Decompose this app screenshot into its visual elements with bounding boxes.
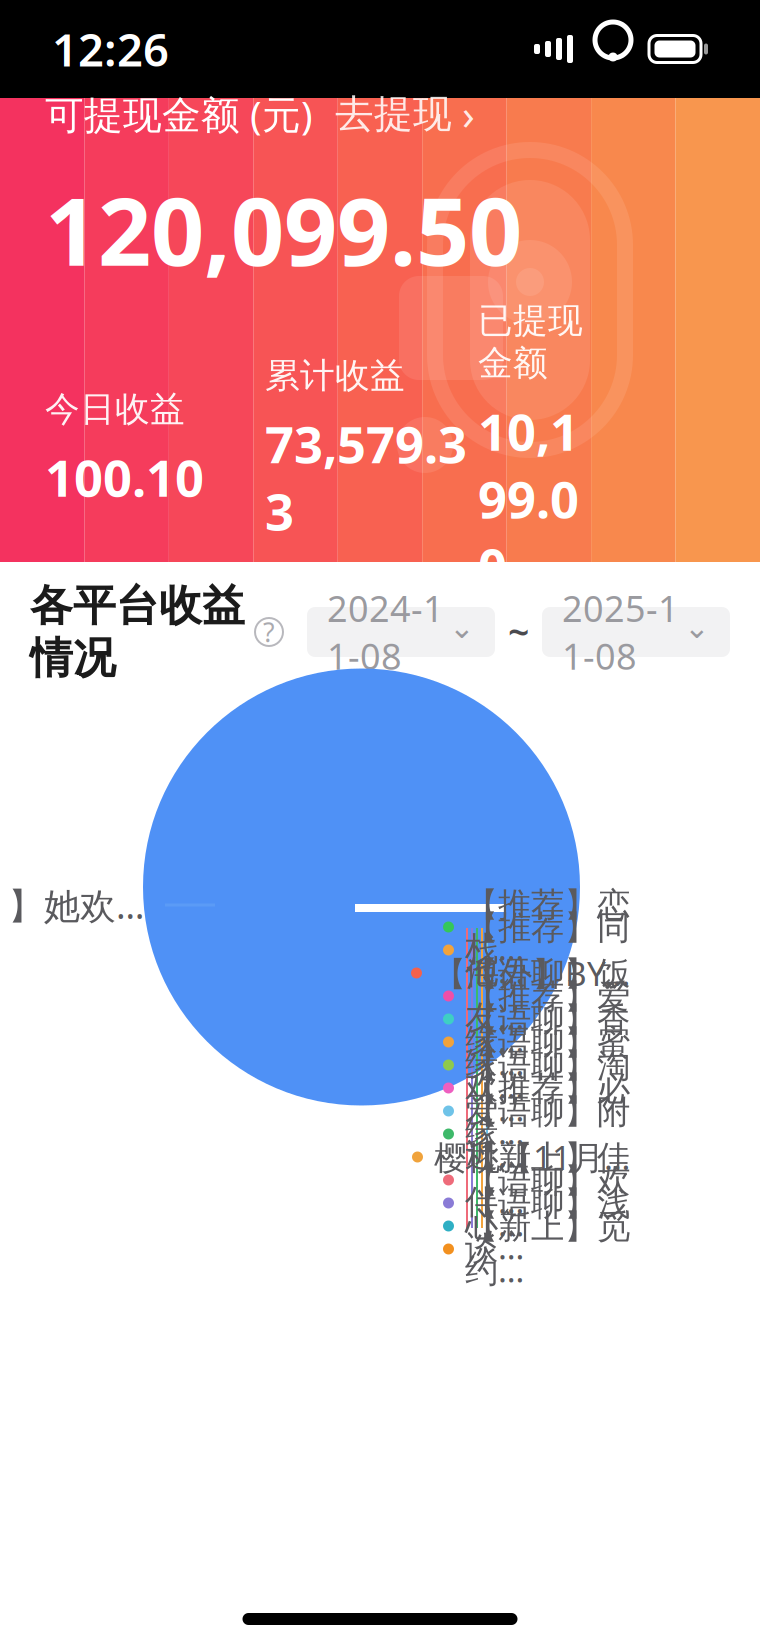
staticText: ⌄: [684, 610, 710, 645]
staticText: 【语聊】欢心…: [465, 1160, 630, 1246]
staticText: 【推荐】恋栈…: [465, 884, 630, 970]
staticText: 120,099.50: [45, 167, 522, 291]
staticText: 】她欢…: [8, 881, 144, 929]
staticText: 【语聊】浅谈…: [465, 1183, 630, 1269]
staticText: 【推荐】爱缘…: [465, 976, 630, 1062]
button[interactable]: 2024-11-08: [307, 607, 495, 657]
staticText: 樱桃【11月…: [434, 1135, 630, 1179]
staticText: 10,199.00: [478, 398, 579, 599]
staticText: 73,579.33: [265, 410, 467, 544]
staticText: 今日收益: [45, 388, 185, 431]
staticText: 【语聊】蜜欢…: [465, 1022, 630, 1108]
staticText: 100.10: [45, 444, 204, 511]
staticText: 【语聊】饭友…: [465, 953, 630, 1039]
staticText: 12:26: [52, 19, 169, 79]
staticText: 2025-11-08: [562, 584, 679, 680]
staticText: 【语聊】附近…: [465, 1091, 630, 1177]
staticText: 去提现: [335, 90, 452, 138]
staticText: ~: [508, 607, 529, 657]
staticText: 【海外】BY…: [433, 951, 630, 995]
staticText: 各平台收益情况: [30, 580, 245, 684]
staticText: 【推荐】同他…: [465, 907, 630, 993]
staticText: 【推荐】必缘…: [465, 1068, 630, 1154]
staticText: 已提现金额: [478, 299, 583, 385]
button[interactable]: 2025-11-08: [542, 607, 730, 657]
staticText: 【新上】佳伴…: [465, 1137, 630, 1223]
staticText: ⌄: [449, 610, 475, 645]
staticText: ›: [462, 87, 475, 141]
staticText: 2024-11-08: [327, 584, 444, 680]
button[interactable]: 去提现: [313, 83, 475, 145]
staticText: 累计收益: [265, 354, 405, 397]
staticText: 【语聊】淘爱…: [465, 1045, 630, 1131]
staticText: 【语聊】香缘…: [465, 999, 630, 1085]
staticText: 可提现金额 (元): [45, 88, 313, 140]
staticText: ?: [263, 614, 275, 650]
button[interactable]: 说明: [251, 614, 287, 650]
staticText: 【新上】觅约…: [465, 1206, 630, 1292]
